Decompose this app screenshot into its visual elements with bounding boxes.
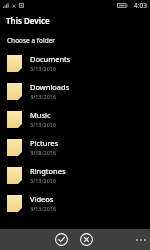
button[interactable]: Videos bbox=[0, 189, 150, 217]
staticText: 3/13/2016 bbox=[30, 93, 57, 100]
staticText: 4:03 bbox=[134, 1, 147, 10]
staticText: Pictures bbox=[30, 138, 59, 148]
staticText: Videos bbox=[30, 194, 54, 204]
button[interactable]: Documents bbox=[0, 49, 150, 77]
staticText: Documents bbox=[30, 54, 71, 64]
staticText: Ringtones bbox=[30, 166, 66, 176]
button[interactable]: Cancel bbox=[77, 230, 96, 249]
staticText: 3/13/2016 bbox=[30, 177, 57, 184]
staticText: Downloads bbox=[30, 82, 70, 92]
staticText: 3/13/2016 bbox=[30, 65, 57, 72]
staticText: This Device bbox=[6, 15, 50, 26]
staticText: Choose a folder bbox=[7, 36, 55, 45]
button[interactable]: Music bbox=[0, 105, 150, 133]
staticText: Music bbox=[30, 110, 51, 120]
button[interactable]: Downloads bbox=[0, 77, 150, 105]
staticText: 3/13/2016 bbox=[30, 205, 57, 212]
staticText: 3/13/2016 bbox=[30, 121, 57, 128]
button[interactable]: Ringtones bbox=[0, 161, 150, 189]
button[interactable]: Accept bbox=[52, 230, 71, 249]
button[interactable]: Pictures bbox=[0, 133, 150, 161]
staticText: 3/18/2016 bbox=[30, 149, 57, 156]
button[interactable]: More options bbox=[132, 231, 150, 249]
